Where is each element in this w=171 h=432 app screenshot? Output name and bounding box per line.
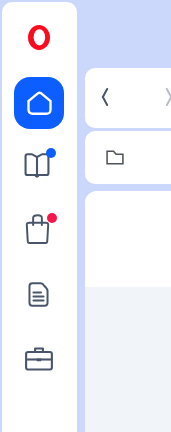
button[interactable]: Shopping bbox=[26, 214, 49, 244]
button[interactable]: Reading list bbox=[24, 153, 50, 177]
button[interactable]: Tab group bbox=[106, 150, 124, 165]
button[interactable]: Forward bbox=[155, 83, 171, 111]
button[interactable]: Opera menu bbox=[28, 25, 50, 50]
button[interactable]: Home bbox=[14, 77, 64, 129]
button[interactable]: Documents bbox=[28, 282, 49, 307]
button[interactable]: Back bbox=[91, 83, 119, 111]
button[interactable]: Workspaces bbox=[25, 346, 53, 371]
